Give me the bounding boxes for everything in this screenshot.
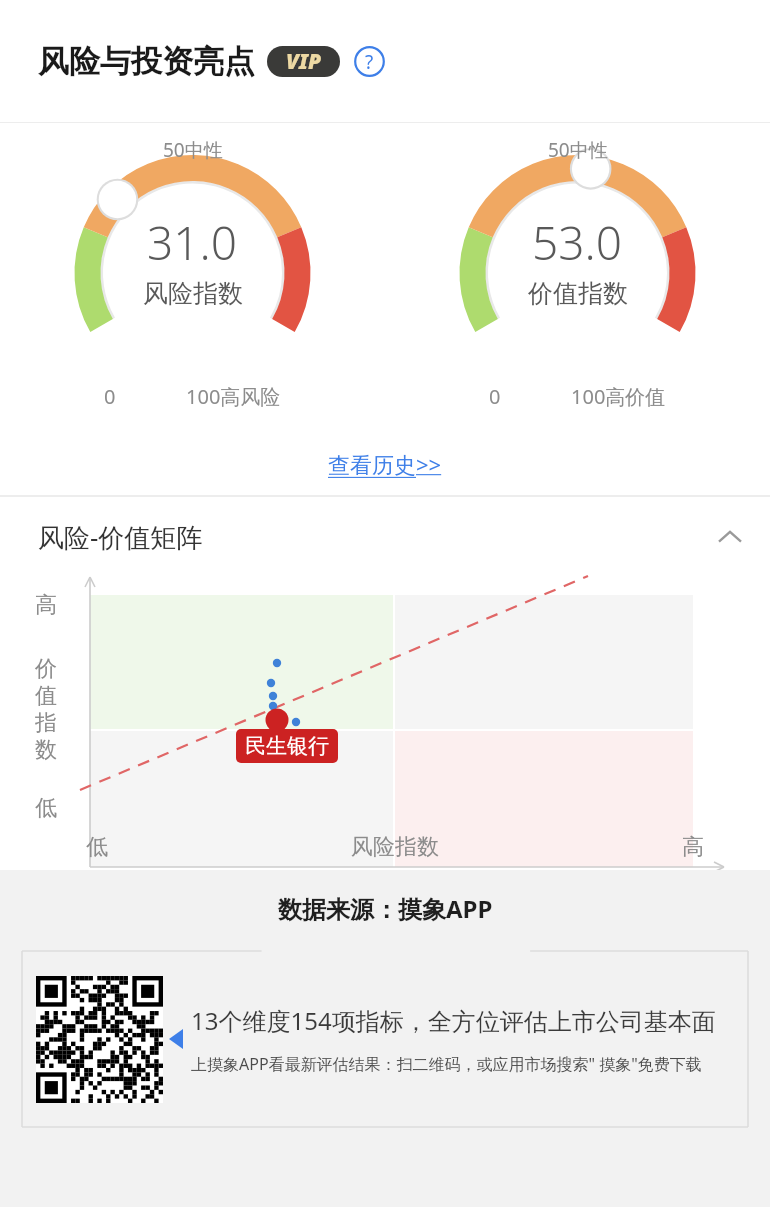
- staticText: 低: [35, 794, 57, 822]
- staticText: 价值指数: [34, 655, 58, 764]
- staticText: 价值指数: [528, 278, 628, 309]
- button[interactable]: 风险-价值矩阵: [0, 497, 770, 577]
- staticText: 风险与投资亮点: [38, 42, 255, 81]
- staticText: 31.0: [147, 211, 238, 274]
- button[interactable]: 民生银行: [236, 729, 338, 763]
- staticText: 0: [489, 383, 501, 410]
- staticText: 风险-价值矩阵: [38, 519, 203, 555]
- staticText: VIP: [286, 47, 321, 76]
- staticText: 高: [35, 591, 57, 619]
- staticText: 上摸象APP看最新评估结果：扫二维码，或应用市场搜索" 摸象"免费下载: [191, 1053, 702, 1075]
- staticText: 100高风险: [186, 383, 281, 410]
- staticText: 数据来源：摸象APP: [278, 892, 493, 925]
- staticText: 风险指数: [143, 278, 243, 309]
- staticText: ?: [365, 49, 374, 75]
- staticText: 风险指数: [351, 833, 439, 861]
- staticText: 查看历史>>: [328, 449, 442, 479]
- staticText: 民生银行: [245, 733, 329, 759]
- staticText: 0: [104, 383, 116, 410]
- button[interactable]: 查看历史>>: [318, 443, 452, 485]
- staticText: 13个维度154项指标，全方位评估上市公司基本面: [191, 1004, 716, 1037]
- staticText: 高: [682, 833, 704, 861]
- other: Collapse: [710, 517, 750, 557]
- button[interactable]: Help: [354, 46, 385, 77]
- staticText: 低: [86, 833, 108, 861]
- staticText: 53.0: [532, 211, 623, 274]
- staticText: 50中性: [548, 137, 608, 163]
- staticText: 50中性: [163, 137, 223, 163]
- staticText: 100高价值: [571, 383, 666, 410]
- button[interactable]: VIP: [267, 46, 340, 77]
